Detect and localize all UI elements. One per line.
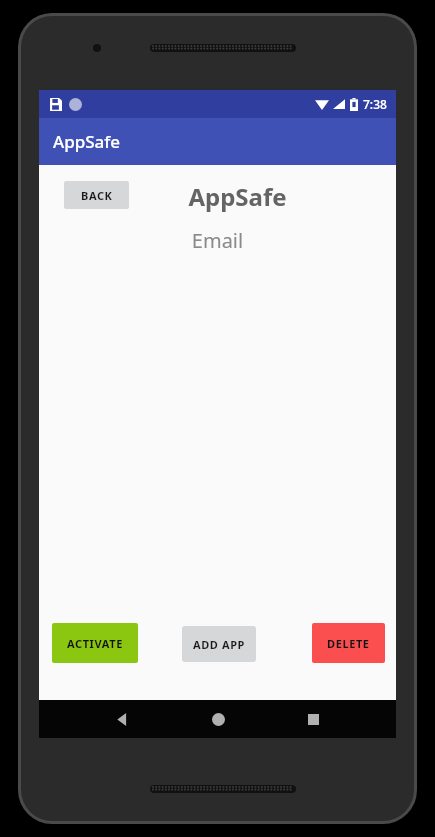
- staticText: ACTIVATE: [67, 636, 123, 651]
- staticText: AppSafe: [99, 180, 376, 213]
- staticText: 7:38: [363, 96, 387, 112]
- staticText: ADD APP: [193, 637, 246, 652]
- button[interactable]: ADD APP: [182, 626, 256, 662]
- staticText: BACK: [81, 188, 113, 203]
- button[interactable]: Recent apps: [294, 700, 332, 738]
- button[interactable]: BACK: [64, 181, 129, 209]
- button[interactable]: DELETE: [312, 623, 385, 663]
- staticText: AppSafe: [53, 130, 121, 153]
- staticText: Email: [39, 227, 396, 254]
- staticText: DELETE: [327, 636, 370, 651]
- button[interactable]: Back: [103, 700, 141, 738]
- button[interactable]: Home: [199, 700, 237, 738]
- button[interactable]: ACTIVATE: [52, 623, 138, 663]
